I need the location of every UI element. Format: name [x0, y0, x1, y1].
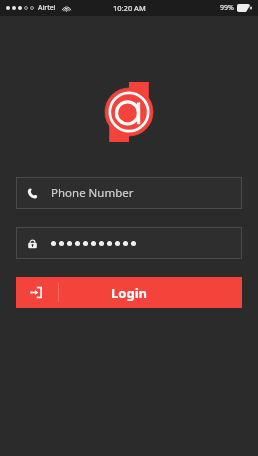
button[interactable] [16, 227, 242, 259]
staticText: 99% [220, 3, 234, 13]
other: Login [30, 286, 43, 299]
staticText: Phone Number [51, 185, 134, 201]
button[interactable]: Phone Number [16, 177, 242, 209]
staticText: Login [111, 284, 147, 302]
staticText: Airtel [38, 3, 56, 13]
button[interactable]: Login [16, 277, 242, 308]
staticText: 10:20 AM [113, 3, 146, 13]
